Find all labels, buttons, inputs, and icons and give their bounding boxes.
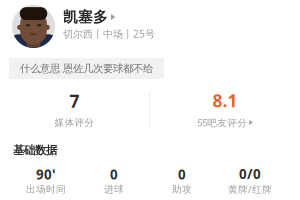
staticText: 0 [178,165,186,183]
button[interactable]: 凯塞多 [12,5,252,49]
staticText: 0 [110,165,118,183]
staticText: 助攻 [172,183,192,195]
staticText: 基础数据 [13,143,57,157]
staticText: 8.1 [212,89,237,112]
staticText: 媒体评分 [54,116,94,129]
staticText: 0/0 [239,165,261,183]
staticText: 黄牌/红牌 [228,183,272,196]
staticText: 55吧友评分 [197,116,247,129]
staticText: 凯塞多 [63,8,108,26]
staticText: 7 [69,89,79,112]
button[interactable]: 8.1 [150,89,300,129]
button[interactable]: 什么意思 恩佐几次要球都不给 [9,58,164,79]
staticText: 什么意思 恩佐几次要球都不给 [20,62,153,75]
staticText: 出场时间 [26,183,66,195]
staticText: 90' [36,165,56,183]
staticText: 进球 [104,183,124,195]
staticText: 切尔西丨中场丨25号 [63,27,155,41]
